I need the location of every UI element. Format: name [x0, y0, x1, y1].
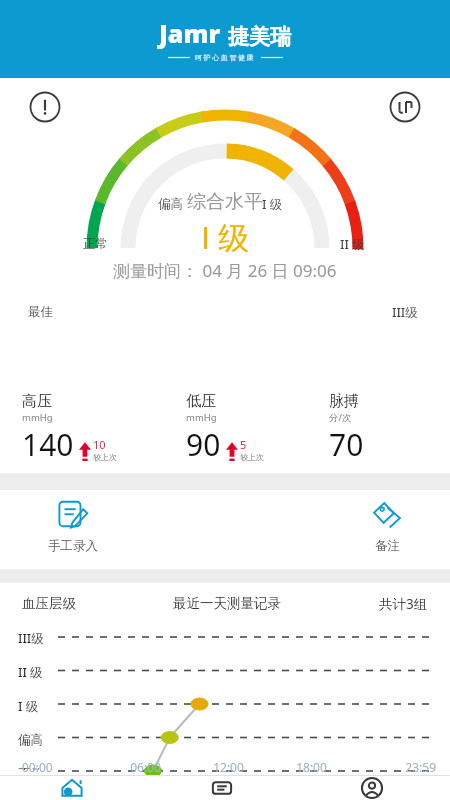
button[interactable]: 手工录入 [48, 499, 98, 554]
staticText: mmHg [22, 411, 53, 424]
staticText: 12:00 [187, 759, 270, 775]
staticText: I 级 [18, 698, 39, 715]
staticText: 低压 [186, 392, 216, 411]
staticText: 共计3组 [379, 595, 428, 613]
button[interactable]: Records [150, 776, 300, 800]
staticText: 正常 [83, 236, 108, 252]
staticText: 正常 [18, 766, 43, 770]
staticText: Jamr [159, 16, 221, 50]
staticText: 06:00 [104, 759, 187, 775]
staticText: 测量时间： 04 月 26 日 09:06 [113, 259, 337, 282]
staticText: 血压层级 [22, 595, 76, 612]
staticText: 23:59 [353, 759, 436, 775]
staticText: mmHg [186, 411, 217, 424]
button[interactable]: Information [28, 90, 62, 124]
staticText: 手工录入 [48, 538, 98, 554]
staticText: 140 [22, 424, 74, 465]
staticText: III级 [392, 304, 418, 321]
button[interactable]: Device [388, 90, 422, 124]
button[interactable]: 备注 [370, 499, 404, 554]
staticText: 高压 [22, 392, 52, 411]
staticText: 最佳 [28, 304, 53, 320]
staticText: 较上次 [93, 452, 117, 462]
staticText: 偏高 [18, 732, 43, 748]
staticText: 较上次 [240, 452, 264, 462]
staticText: 90 [186, 424, 221, 465]
staticText: 18:00 [270, 759, 353, 775]
staticText: 分/次 [329, 411, 352, 424]
button[interactable]: Home [0, 776, 150, 800]
staticText: II 级 [18, 664, 43, 681]
staticText: 70 [329, 424, 364, 465]
staticText: II 级 [340, 236, 365, 253]
staticText: 脉搏 [329, 392, 359, 411]
staticText: 10 [93, 437, 106, 452]
staticText: I 级 [262, 196, 283, 213]
staticText: 00:00 [22, 759, 104, 775]
staticText: III级 [18, 630, 44, 647]
staticText: 备注 [375, 538, 400, 554]
staticText: 5 [240, 437, 247, 452]
staticText: 综合水平 [187, 190, 263, 214]
staticText: 最近一天测量记录 [173, 595, 281, 612]
staticText: 偏高 [158, 196, 183, 212]
staticText: Ⅰ 级 [201, 216, 250, 258]
button[interactable]: Profile [300, 776, 450, 800]
staticText: 呵护心血管健康 [195, 53, 256, 62]
staticText: 捷美瑞 [228, 24, 291, 50]
